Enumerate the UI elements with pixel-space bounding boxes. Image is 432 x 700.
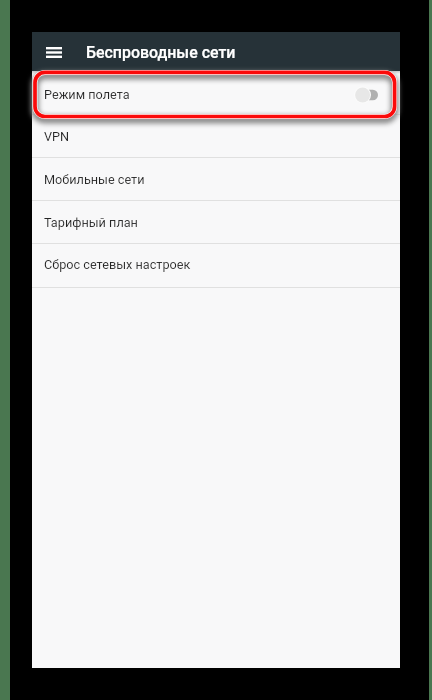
staticText: Сброс сетевых настроек bbox=[44, 257, 191, 272]
button[interactable]: VPN bbox=[32, 115, 400, 158]
button[interactable]: Мобильные сети bbox=[32, 158, 400, 201]
staticText: Мобильные сети bbox=[44, 172, 145, 187]
staticText: Беспроводные сети bbox=[86, 43, 236, 62]
staticText: Режим полета bbox=[44, 87, 130, 102]
button[interactable]: Open navigation menu bbox=[39, 37, 69, 67]
staticText: Тарифный план bbox=[44, 215, 138, 230]
button[interactable]: Режим полета bbox=[32, 73, 400, 116]
button[interactable]: Тарифный план bbox=[32, 201, 400, 244]
button[interactable]: Сброс сетевых настроек bbox=[32, 243, 400, 286]
button[interactable]: Airplane mode, off bbox=[355, 87, 378, 103]
staticText: VPN bbox=[44, 129, 70, 144]
